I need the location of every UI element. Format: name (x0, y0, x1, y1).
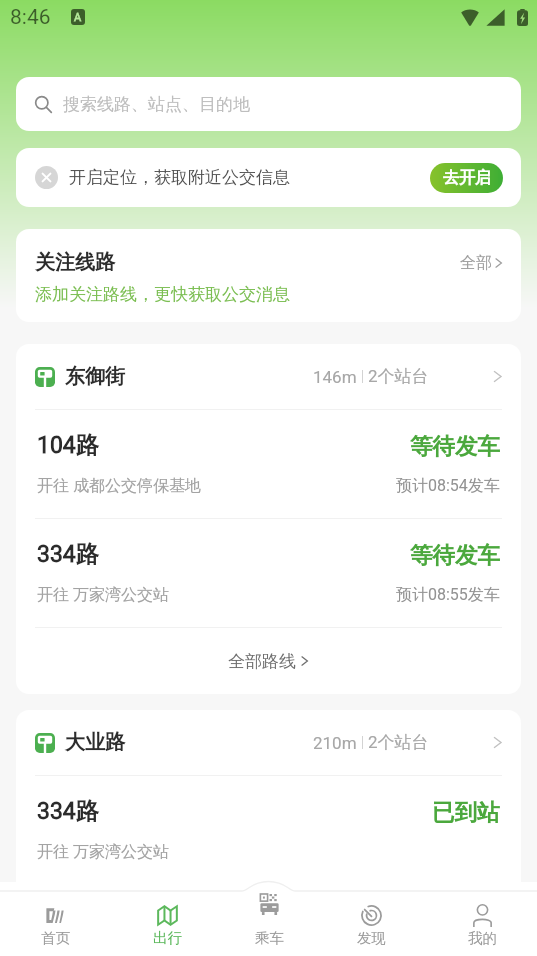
staticText: 开往 成都公交停保基地 (37, 476, 201, 496)
button[interactable]: 乘车 (219, 882, 319, 956)
button[interactable]: 首页 (5, 882, 105, 956)
button[interactable]: 东御街 (16, 344, 521, 409)
button[interactable]: 104路 (16, 410, 521, 518)
staticText: 334路 (37, 540, 99, 569)
staticText: 334路 (37, 797, 99, 826)
button[interactable]: 334路 (16, 519, 521, 627)
button[interactable]: 去开启 (430, 163, 503, 193)
button[interactable]: 关注线路 (16, 229, 521, 322)
staticText: 添加关注路线，更快获取公交消息 (35, 284, 290, 305)
staticText: 开往 万家湾公交站 (37, 842, 169, 862)
staticText: 开往 万家湾公交站 (37, 585, 169, 605)
staticText: 2个站台 (368, 366, 429, 387)
button[interactable]: 出行 (117, 882, 217, 956)
staticText: 2个站台 (368, 732, 429, 753)
staticText: 大业路 (65, 730, 125, 755)
staticText: 预计08:54发车 (396, 476, 500, 496)
staticText: 搜索线路、站点、目的地 (63, 94, 250, 115)
staticText: 出行 (153, 929, 182, 947)
staticText: 去开启 (443, 168, 491, 188)
staticText: 首页 (41, 929, 70, 947)
button[interactable]: 334路 (16, 776, 521, 884)
staticText: 146m (313, 367, 357, 387)
staticText: 乘车 (255, 929, 284, 947)
staticText: 等待发车 (410, 541, 500, 569)
staticText: 等待发车 (410, 907, 500, 935)
staticText: 104路 (37, 906, 99, 935)
staticText: 全部路线 (228, 651, 296, 672)
staticText: 全部 (460, 253, 492, 273)
staticText: 发现 (357, 929, 386, 947)
button[interactable]: 我的 (432, 882, 532, 956)
button[interactable]: 发现 (321, 882, 421, 956)
staticText: 已到站 (432, 798, 500, 826)
staticText: 104路 (37, 431, 99, 460)
staticText: 开启定位，获取附近公交信息 (69, 167, 290, 188)
staticText: A (74, 11, 82, 24)
staticText: 我的 (468, 929, 497, 947)
button[interactable]: 全部路线 (16, 628, 521, 694)
staticText: 8:46 (10, 5, 51, 30)
button[interactable]: 大业路 (16, 710, 521, 775)
button[interactable]: 搜索线路、站点、目的地 (16, 77, 521, 131)
staticText: 关注线路 (35, 250, 115, 275)
button[interactable]: 104路 (16, 885, 521, 956)
staticText: 东御街 (65, 364, 125, 389)
staticText: 预计08:55发车 (396, 585, 500, 605)
staticText: 等待发车 (410, 432, 500, 460)
button[interactable]: 关闭 (35, 166, 58, 189)
staticText: 210m (313, 733, 357, 753)
